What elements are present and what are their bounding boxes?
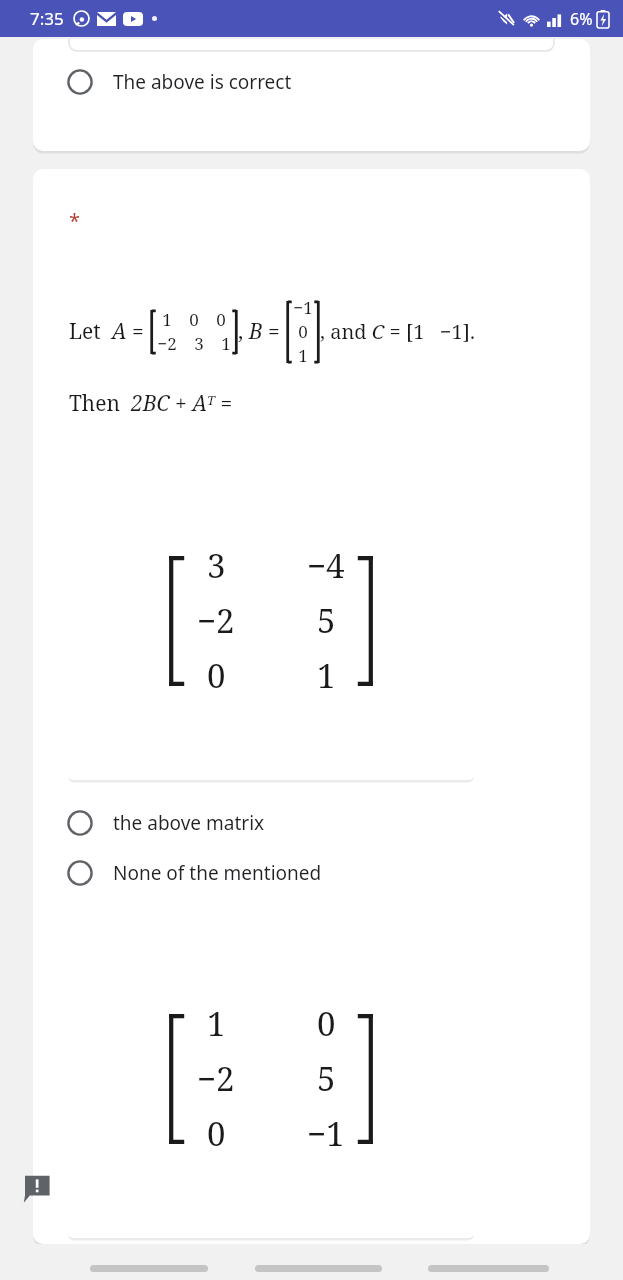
staticText: 1 — [162, 308, 172, 331]
button[interactable]: the above matrix — [33, 804, 590, 842]
staticText: −2 — [197, 598, 235, 643]
staticText: 3 — [207, 543, 226, 588]
staticText: −2 — [157, 332, 177, 355]
button[interactable]: The above is correct — [33, 67, 590, 97]
staticText: 0 — [207, 1111, 226, 1156]
staticText: Let A = — [69, 317, 150, 346]
staticText: 5 — [317, 1056, 336, 1101]
button[interactable]: None of the mentioned — [33, 854, 590, 892]
staticText: 0 — [317, 1001, 336, 1046]
staticText: Then 2BC + AT = — [69, 389, 233, 418]
staticText: −1 — [307, 1111, 345, 1156]
staticText: the above matrix — [113, 810, 265, 836]
staticText: 1 — [298, 344, 308, 367]
staticText: −4 — [307, 543, 345, 588]
staticText: 0 — [189, 308, 199, 331]
staticText: 0 — [216, 308, 226, 331]
staticText: 6% — [570, 8, 593, 30]
staticText: 5 — [317, 598, 336, 643]
staticText: 0 — [298, 320, 308, 343]
staticText: The above is correct — [113, 69, 292, 95]
staticText: 0 — [207, 653, 226, 698]
staticText: , B = — [238, 317, 286, 346]
button[interactable]: Report a problem — [22, 1174, 52, 1204]
staticText: −1 — [293, 296, 313, 319]
staticText: 1 — [221, 332, 231, 355]
staticText: 1 — [207, 1001, 226, 1046]
staticText: None of the mentioned — [113, 860, 322, 886]
staticText: , and C = [1 −1]. — [320, 318, 475, 345]
staticText: 3 — [194, 332, 204, 355]
staticText: −2 — [197, 1056, 235, 1101]
staticText: * — [69, 207, 81, 234]
staticText: 1 — [317, 653, 336, 698]
staticText: 7:35 — [30, 7, 64, 30]
